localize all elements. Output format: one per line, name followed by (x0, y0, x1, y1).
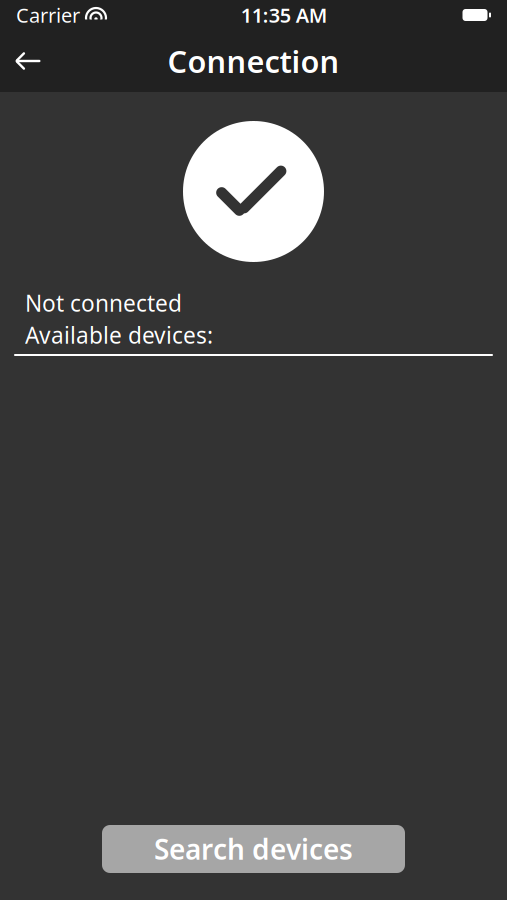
staticText: 11:35 AM (241, 2, 328, 28)
staticText: Connection (167, 41, 339, 81)
staticText: Not connected (25, 288, 182, 318)
staticText: Carrier (16, 2, 80, 28)
button[interactable]: Search devices (102, 825, 405, 873)
staticText: Search devices (154, 830, 353, 868)
staticText: Available devices: (25, 320, 213, 350)
button[interactable]: Back (0, 31, 56, 91)
